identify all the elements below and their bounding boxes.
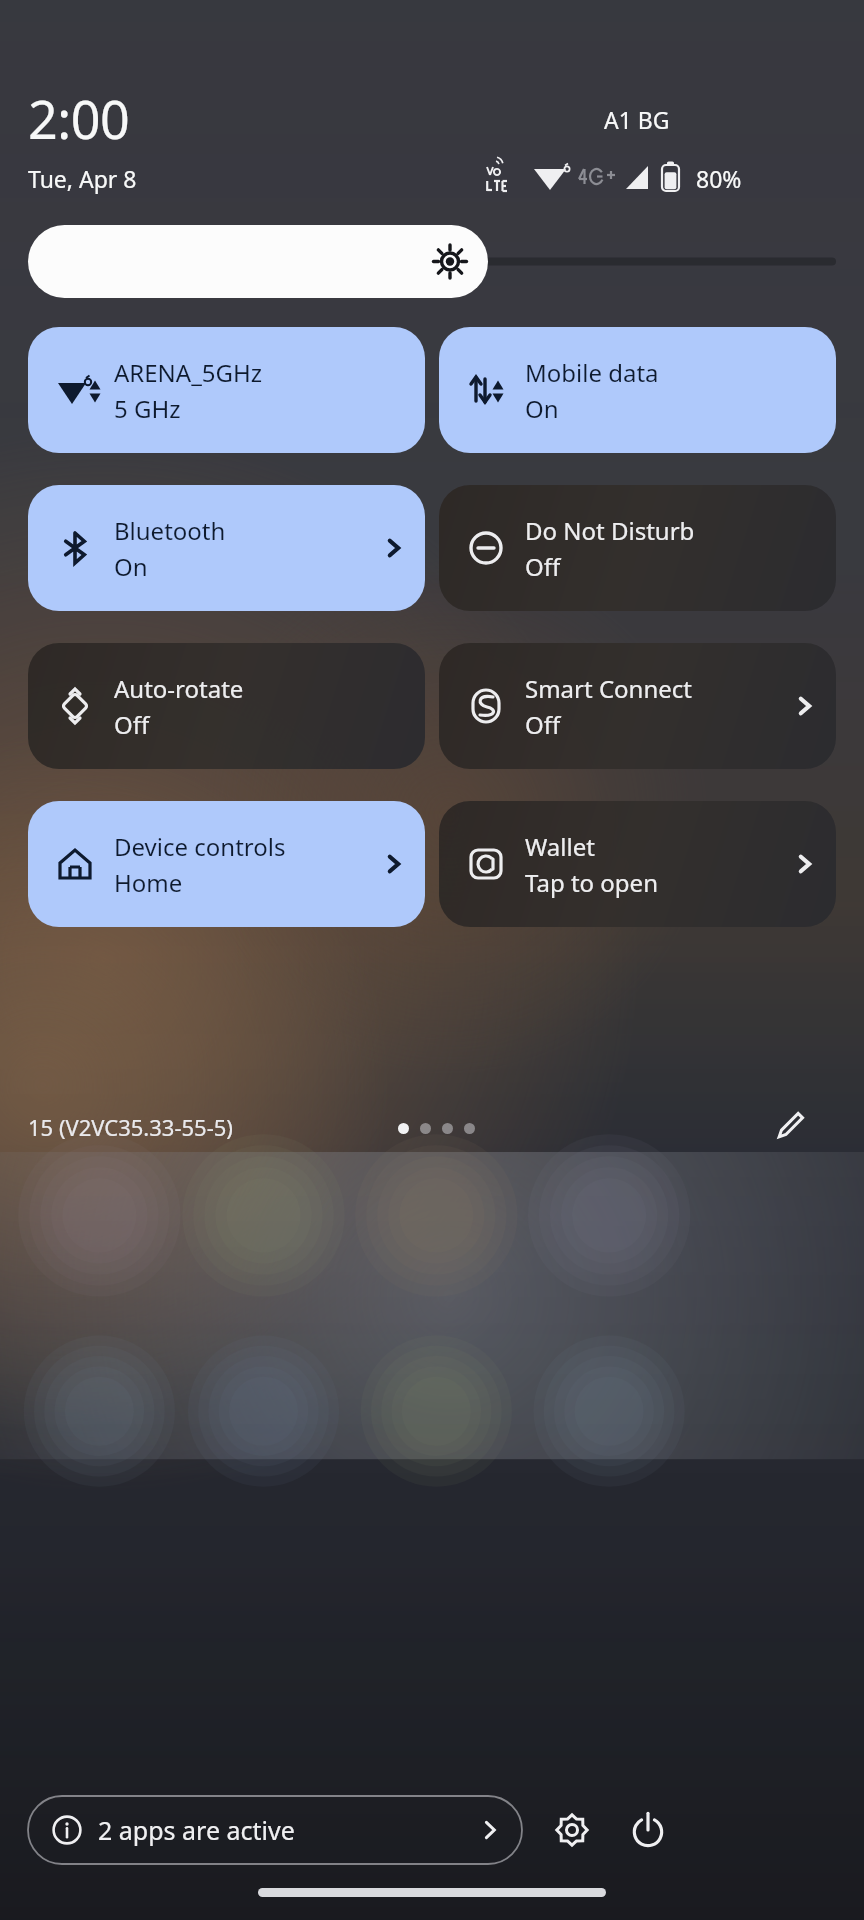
staticText: 80% [696, 163, 742, 194]
staticText: Mobile data [525, 356, 659, 389]
button[interactable]: ARENA_5GHz [28, 327, 425, 453]
staticText: Home [114, 866, 183, 899]
button[interactable]: Wallet [439, 801, 836, 927]
staticText: Tap to open [525, 866, 658, 899]
button[interactable]: Auto-rotate [28, 643, 425, 769]
button[interactable]: Edit tiles [762, 1098, 818, 1154]
staticText: A1 BG [604, 104, 670, 135]
staticText: 5 GHz [114, 392, 181, 425]
button[interactable]: Device controls [28, 801, 425, 927]
button[interactable]: Settings [540, 1798, 604, 1862]
staticText: 2 apps are active [98, 1813, 295, 1847]
staticText: On [525, 392, 559, 425]
button[interactable]: Bluetooth [28, 485, 425, 611]
staticText: 15 (V2VC35.33-55-5) [28, 1112, 233, 1142]
staticText: 2:00 [28, 83, 130, 154]
button[interactable]: Do Not Disturb [439, 485, 836, 611]
staticText: Off [525, 708, 561, 741]
staticText: Do Not Disturb [525, 514, 695, 547]
staticText: On [114, 550, 148, 583]
staticText: Bluetooth [114, 514, 226, 547]
staticText: Off [114, 708, 150, 741]
staticText: Tue, Apr 8 [28, 163, 137, 194]
staticText: Smart Connect [525, 672, 692, 705]
staticText: Off [525, 550, 561, 583]
staticText: Auto-rotate [114, 672, 244, 705]
staticText: Device controls [114, 830, 286, 863]
button[interactable]: Power [616, 1798, 680, 1862]
button[interactable]: Smart Connect [439, 643, 836, 769]
button[interactable] [28, 225, 836, 298]
staticText: Wallet [525, 830, 595, 863]
staticText: ARENA_5GHz [114, 356, 263, 389]
button[interactable]: Mobile data [439, 327, 836, 453]
button[interactable]: 2 apps are active [28, 1796, 522, 1864]
